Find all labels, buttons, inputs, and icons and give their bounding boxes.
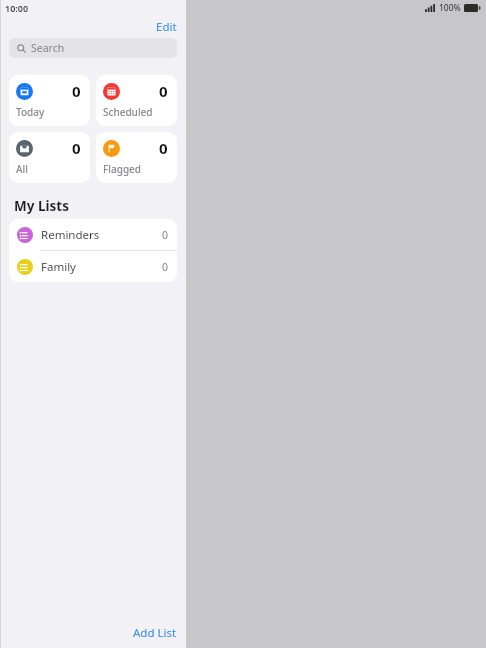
staticText: 10:00 (5, 2, 29, 14)
staticText: Family (41, 259, 76, 275)
staticText: 0 (72, 81, 81, 101)
button[interactable]: 0 (9, 75, 90, 126)
staticText: Scheduled (103, 105, 153, 119)
staticText: Reminders (41, 227, 100, 243)
staticText: 0 (162, 228, 169, 242)
staticText: Add List (133, 625, 177, 641)
staticText: 0 (159, 81, 168, 101)
button[interactable]: Family (9, 251, 177, 282)
staticText: 0 (162, 260, 169, 274)
staticText: All (16, 162, 28, 176)
button[interactable]: Search (9, 38, 177, 58)
staticText: 0 (72, 138, 81, 158)
button[interactable]: 0 (96, 132, 177, 183)
button[interactable]: Edit (147, 17, 186, 37)
staticText: 0 (159, 138, 168, 158)
button[interactable]: Add List (124, 622, 186, 644)
staticText: 100% (439, 2, 461, 14)
button[interactable]: 0 (96, 75, 177, 126)
staticText: Edit (156, 19, 177, 35)
button[interactable]: Reminders (9, 219, 177, 251)
staticText: Search (31, 41, 65, 55)
button[interactable]: 0 (9, 132, 90, 183)
staticText: Flagged (103, 162, 142, 176)
staticText: My Lists (14, 197, 69, 215)
staticText: Today (16, 105, 45, 119)
